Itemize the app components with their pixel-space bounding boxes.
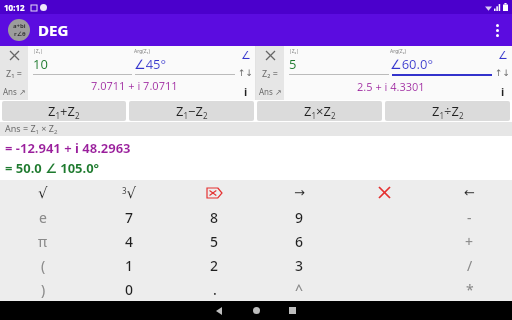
staticText: ← — [464, 185, 475, 200]
button[interactable]: ^ — [257, 277, 342, 301]
staticText: Z1×Z2 — [304, 102, 336, 121]
staticText: ↑↓ — [495, 68, 511, 78]
button[interactable]: Swap — [237, 64, 255, 82]
staticText: 3√ — [122, 184, 137, 201]
button[interactable]: Recents — [274, 301, 310, 320]
button[interactable]: - — [427, 205, 512, 229]
staticText: 0 — [125, 280, 134, 299]
button[interactable]: ∠60.0° — [390, 55, 492, 73]
button[interactable]: Rectangular form — [237, 82, 255, 100]
button[interactable]: e — [0, 205, 86, 229]
staticText: Z1+Z2 — [48, 102, 80, 121]
button[interactable]: 4 — [86, 229, 172, 253]
button[interactable]: Cube root — [86, 180, 172, 205]
button[interactable]: Rectangular form — [494, 82, 512, 100]
button[interactable]: 7 — [86, 205, 172, 229]
button[interactable]: Square root — [0, 180, 86, 205]
button[interactable]: Ans ↗ — [256, 82, 284, 100]
staticText: 10:12 — [4, 2, 25, 13]
staticText: 7 — [125, 208, 134, 227]
button[interactable]: 2 — [172, 253, 257, 277]
button[interactable]: 0 — [86, 277, 172, 301]
staticText: Z1÷Z2 — [432, 102, 464, 121]
button[interactable]: ∠45° — [134, 55, 235, 73]
button[interactable]: Back — [202, 301, 238, 320]
button[interactable]: Polar form — [237, 46, 255, 64]
button[interactable]: ) — [0, 277, 86, 301]
button[interactable]: Clear all — [172, 180, 257, 205]
staticText: Ans ↗ — [259, 86, 282, 97]
staticText: ( — [41, 256, 46, 275]
staticText: . — [213, 280, 217, 299]
button[interactable]: ( — [0, 253, 86, 277]
staticText: ) — [41, 280, 46, 299]
button[interactable]: More options — [482, 14, 512, 46]
staticText: Z₂ = — [262, 67, 278, 79]
button[interactable]: / — [427, 253, 512, 277]
button[interactable]: Ans ↗ — [0, 82, 28, 100]
button[interactable]: Swap — [494, 64, 512, 82]
staticText: 1 — [125, 256, 134, 275]
button[interactable]: Z1+Z2 — [2, 101, 126, 121]
button[interactable]: 3 — [257, 253, 342, 277]
staticText: 3 — [295, 256, 304, 275]
button[interactable]: Z₁ = — [0, 64, 28, 82]
staticText: ∠ — [241, 49, 251, 62]
staticText: Z1−Z2 — [176, 102, 208, 121]
staticText: e — [39, 208, 47, 227]
staticText: |Z₁| — [33, 48, 134, 55]
button[interactable]: Z1÷Z2 — [385, 101, 510, 121]
staticText: 2 — [210, 256, 219, 275]
staticText: Ans ↗ — [3, 86, 26, 97]
button[interactable]: Clear Z₂ — [256, 46, 284, 64]
staticText: * — [466, 280, 474, 299]
button[interactable]: App icon — [8, 19, 30, 41]
button[interactable]: Polar form — [494, 46, 512, 64]
staticText: ↑↓ — [238, 68, 254, 78]
button[interactable]: 9 — [257, 205, 342, 229]
button[interactable]: π — [0, 229, 86, 253]
staticText: √ — [38, 184, 48, 201]
staticText: + — [465, 232, 474, 251]
staticText: = -12.941 + i 48.2963 — [5, 139, 131, 157]
button[interactable]: Z₂ = — [256, 64, 284, 82]
staticText: / — [467, 256, 473, 275]
button[interactable]: * — [427, 277, 512, 301]
staticText: Arg(Z₁) — [134, 48, 235, 55]
staticText: a+bi — [13, 22, 26, 30]
button[interactable]: 6 — [257, 229, 342, 253]
staticText: → — [294, 185, 305, 200]
staticText: - — [467, 208, 472, 227]
staticText: π — [38, 232, 48, 251]
button[interactable]: 10 — [33, 55, 134, 73]
staticText: ∠ — [498, 49, 508, 62]
button[interactable]: Home — [238, 301, 274, 320]
button[interactable]: 5 — [289, 55, 390, 73]
staticText: ^ — [295, 280, 304, 299]
staticText: Z₁ = — [6, 67, 22, 79]
button[interactable]: + — [427, 229, 512, 253]
staticText: 5 — [210, 232, 219, 251]
button[interactable]: Z1×Z2 — [257, 101, 382, 121]
button[interactable]: Move cursor left — [427, 180, 512, 205]
staticText: i — [501, 84, 505, 99]
staticText: = 50.0 ∠ 105.0° — [5, 159, 100, 177]
button[interactable]: . — [172, 277, 257, 301]
staticText: 9 — [295, 208, 304, 227]
staticText: |Z₂| — [289, 48, 390, 55]
staticText: DEG — [38, 20, 69, 40]
button[interactable]: 8 — [172, 205, 257, 229]
staticText: r∠θ — [14, 30, 26, 38]
staticText: 8 — [210, 208, 219, 227]
staticText: 7.0711 + i 7.0711 — [91, 78, 178, 93]
staticText: Arg(Z₂) — [390, 48, 492, 55]
staticText: i — [244, 84, 248, 99]
button[interactable]: 5 — [172, 229, 257, 253]
button[interactable]: Z1−Z2 — [129, 101, 254, 121]
button[interactable]: 1 — [86, 253, 172, 277]
button[interactable]: Clear Z₁ — [0, 46, 28, 64]
button[interactable]: Clear entry — [342, 180, 427, 205]
staticText: Ans = Z1 × Z2 — [5, 122, 58, 136]
staticText: 4 — [125, 232, 134, 251]
button[interactable]: Move cursor right — [257, 180, 342, 205]
